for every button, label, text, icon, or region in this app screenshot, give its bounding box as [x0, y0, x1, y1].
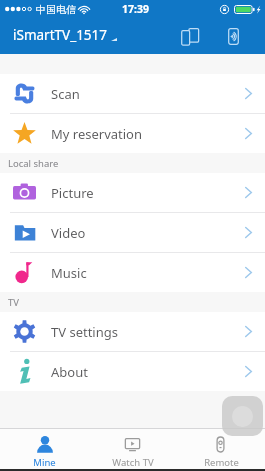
- button[interactable]: Mine: [0, 429, 89, 469]
- staticText: My reservation: [51, 125, 143, 143]
- button[interactable]: Connected devices: [173, 18, 207, 54]
- button[interactable]: TV settings: [0, 312, 265, 351]
- button[interactable]: Picture: [0, 173, 265, 212]
- button[interactable]: Watch TV: [89, 429, 177, 469]
- button[interactable]: My reservation: [0, 114, 265, 153]
- staticText: Mine: [33, 456, 56, 469]
- staticText: Remote: [204, 456, 239, 469]
- staticText: Video: [51, 224, 86, 242]
- button[interactable]: Music: [0, 253, 265, 292]
- button[interactable]: About: [0, 352, 265, 391]
- button[interactable]: Cast screen: [216, 18, 250, 54]
- button[interactable]: iSmartTV_1517: [13, 26, 117, 44]
- staticText: 中国电信: [36, 3, 76, 16]
- staticText: iSmartTV_1517: [13, 26, 108, 44]
- staticText: Local share: [8, 157, 59, 170]
- button[interactable]: Scan: [0, 74, 265, 113]
- staticText: Watch TV: [112, 456, 154, 469]
- staticText: About: [51, 363, 88, 381]
- staticText: TV: [8, 296, 19, 309]
- staticText: Picture: [51, 184, 94, 202]
- button[interactable]: Assistive touch: [222, 396, 263, 436]
- button[interactable]: Video: [0, 213, 265, 252]
- staticText: TV settings: [51, 323, 118, 341]
- staticText: Music: [51, 264, 87, 282]
- button[interactable]: Remote: [177, 429, 265, 469]
- staticText: 17:39: [122, 2, 149, 16]
- staticText: Scan: [51, 85, 80, 103]
